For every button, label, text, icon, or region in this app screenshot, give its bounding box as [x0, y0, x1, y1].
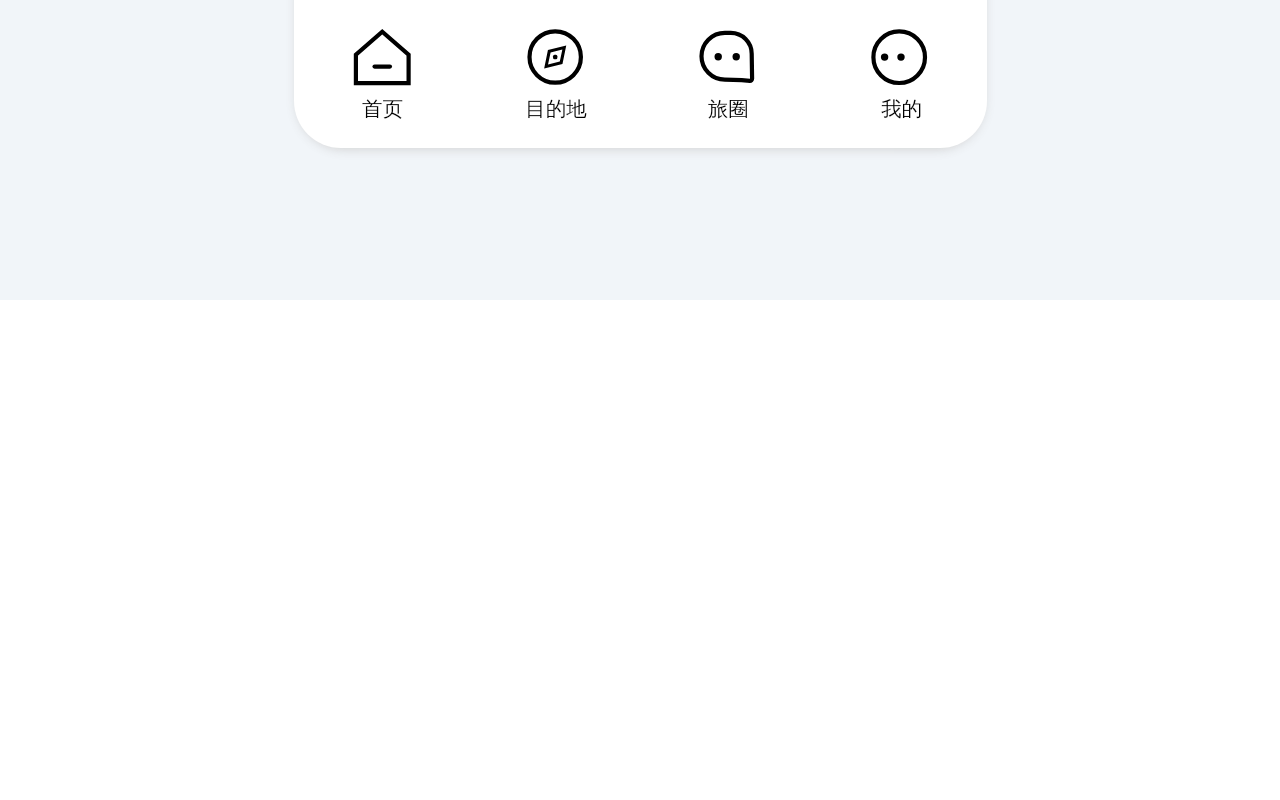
staticText: 我的 [881, 96, 922, 122]
button[interactable]: Travel circle [641, 0, 814, 148]
button[interactable]: Home [294, 0, 468, 148]
staticText: 目的地 [525, 96, 587, 122]
button[interactable]: Profile [814, 0, 987, 148]
staticText: 旅圈 [708, 96, 749, 122]
button[interactable]: Destinations [468, 0, 641, 148]
staticText: 首页 [362, 96, 403, 122]
